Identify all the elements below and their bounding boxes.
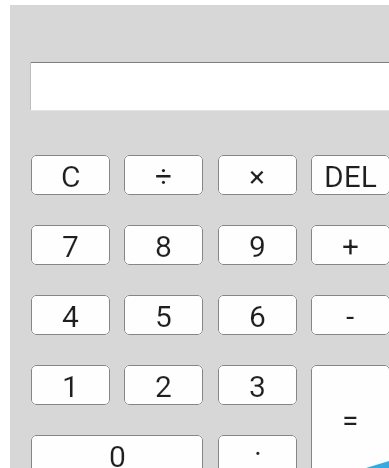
staticText: + <box>342 229 360 264</box>
staticText: ÷ <box>155 159 173 194</box>
button[interactable]: Four <box>31 295 110 335</box>
button[interactable]: Six <box>218 295 297 335</box>
button[interactable]: Delete <box>311 155 389 195</box>
button[interactable]: Zero <box>31 435 203 468</box>
button[interactable]: Seven <box>31 225 110 265</box>
staticText: 3 <box>249 369 266 404</box>
button[interactable]: Divide <box>124 155 203 195</box>
staticText: - <box>346 299 355 334</box>
staticText: 8 <box>155 229 172 264</box>
staticText: DEL <box>324 159 377 194</box>
staticText: 7 <box>62 229 79 264</box>
button[interactable]: Minus <box>311 295 389 335</box>
button[interactable]: Five <box>124 295 203 335</box>
button[interactable]: Two <box>124 365 203 405</box>
staticText: 0 <box>109 439 126 468</box>
staticText: · <box>254 436 262 468</box>
staticText: = <box>342 403 359 438</box>
button[interactable]: Plus <box>311 225 389 265</box>
staticText: 5 <box>155 299 172 334</box>
staticText: C <box>61 159 81 194</box>
button[interactable]: Calculator display <box>30 62 389 111</box>
staticText: 9 <box>249 229 266 264</box>
button[interactable]: Nine <box>218 225 297 265</box>
button[interactable]: Clear <box>31 155 110 195</box>
staticText: 4 <box>62 299 79 334</box>
button[interactable]: Equals <box>311 365 389 468</box>
staticText: 2 <box>155 369 172 404</box>
button[interactable]: One <box>31 365 110 405</box>
staticText: 1 <box>62 369 79 404</box>
staticText: 6 <box>249 299 266 334</box>
staticText: × <box>249 159 266 194</box>
button[interactable]: Decimal point <box>218 435 297 468</box>
button[interactable]: Multiply <box>218 155 297 195</box>
button[interactable]: Eight <box>124 225 203 265</box>
button[interactable]: Three <box>218 365 297 405</box>
